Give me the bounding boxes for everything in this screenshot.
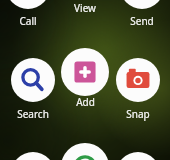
staticText: Snap xyxy=(126,107,150,121)
staticText: Send xyxy=(130,14,154,28)
staticText: View xyxy=(74,1,96,15)
button[interactable]: Add xyxy=(61,48,109,96)
button[interactable]: Call xyxy=(6,0,50,9)
button[interactable]: Send xyxy=(120,0,164,9)
button[interactable]: App xyxy=(11,152,55,160)
staticText: Add xyxy=(76,95,95,109)
button[interactable]: App xyxy=(116,152,160,160)
staticText: Search xyxy=(17,107,49,121)
button[interactable]: Search xyxy=(11,58,55,102)
button[interactable]: Refresh xyxy=(61,143,109,160)
button[interactable]: Snap xyxy=(116,58,160,102)
staticText: Call xyxy=(19,14,37,28)
